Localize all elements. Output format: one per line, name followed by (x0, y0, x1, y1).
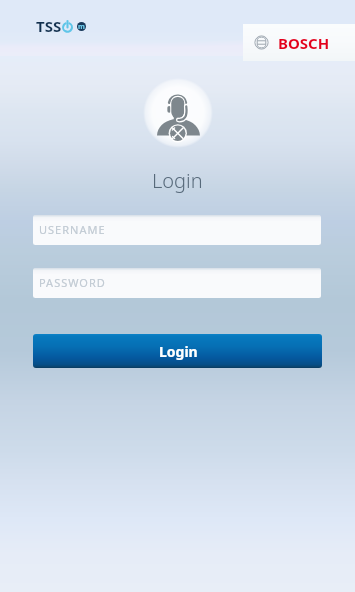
staticText: Login (152, 167, 203, 194)
staticText: m (78, 22, 85, 31)
button[interactable]: USERNAME (33, 215, 321, 245)
staticText: BOSCH (278, 33, 330, 53)
staticText: Login (159, 342, 198, 361)
staticText: TSS (36, 16, 62, 36)
button[interactable]: PASSWORD (33, 268, 321, 298)
button[interactable]: Login (33, 334, 322, 368)
staticText: PASSWORD (39, 275, 106, 290)
staticText: USERNAME (39, 222, 106, 237)
